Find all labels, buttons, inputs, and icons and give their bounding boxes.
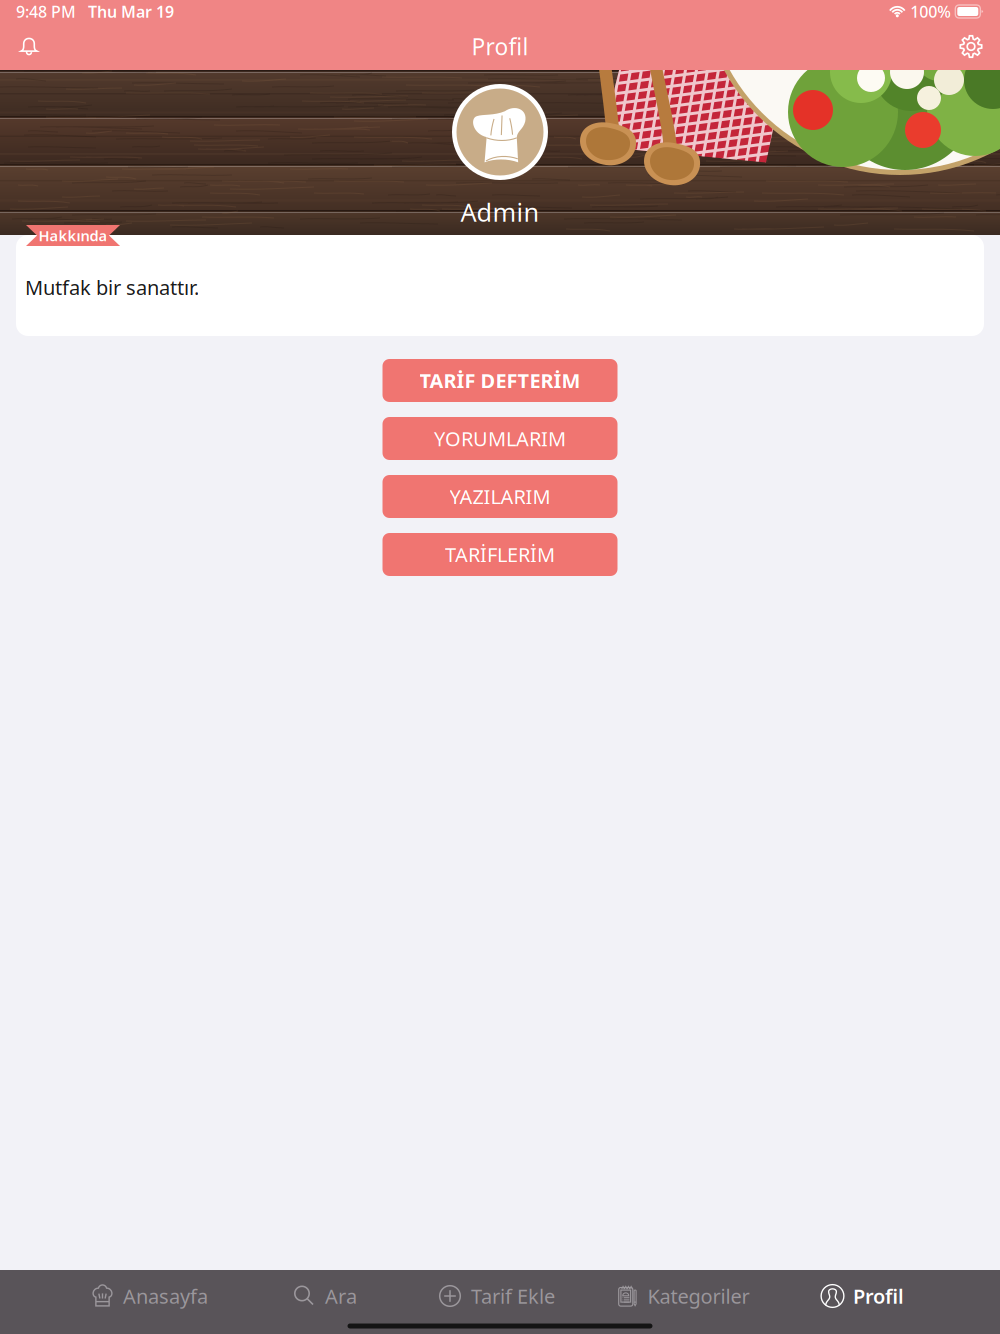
staticText: Thu Mar 19 [76,1,174,22]
button[interactable]: Ara [234,1275,414,1317]
button[interactable]: TARİFLERİM [382,533,617,576]
button[interactable]: Hakkında [26,225,120,246]
staticText: Ara [325,1283,357,1309]
staticText: Profil [853,1283,904,1309]
staticText: 9:48 PM [16,1,76,22]
staticText: Tarif Ekle [471,1283,555,1309]
staticText: Hakkında [38,226,107,245]
button[interactable]: Ayarlar [948,23,994,69]
staticText: Admin [460,195,539,229]
staticText: YAZILARIM [449,483,550,510]
button[interactable]: Anasayfa [59,1275,239,1317]
staticText: Profil [471,31,528,61]
staticText: Mutfak bir sanattır. [25,274,199,301]
button[interactable]: Kategoriler [592,1275,772,1317]
button[interactable]: TARİF DEFTERİM [382,359,617,402]
button[interactable]: Tarif Ekle [406,1275,586,1317]
button[interactable]: Profil [772,1275,952,1317]
staticText: TARİF DEFTERİM [419,367,580,394]
staticText: Kategoriler [647,1283,749,1309]
staticText: 100% [906,1,955,22]
button[interactable]: YORUMLARIM [382,417,617,460]
button[interactable]: Bildirimler [6,23,52,69]
staticText: TARİFLERİM [445,541,555,568]
staticText: Anasayfa [123,1283,208,1309]
button[interactable]: YAZILARIM [382,475,617,518]
staticText: YORUMLARIM [434,425,566,452]
